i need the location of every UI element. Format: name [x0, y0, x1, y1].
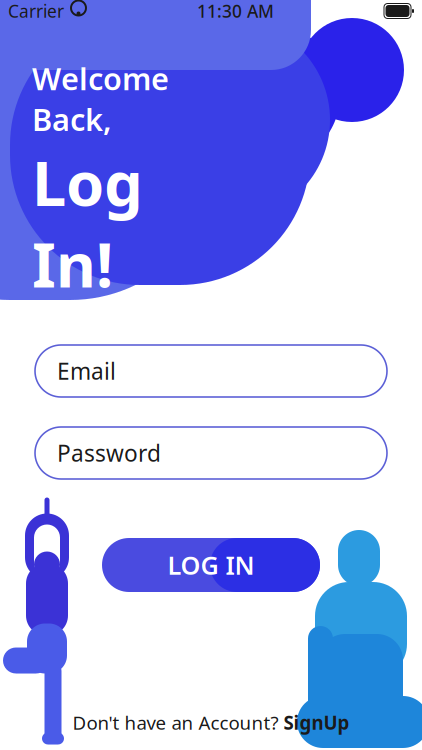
staticText: 11:30 AM [197, 0, 274, 22]
button[interactable]: Password [35, 427, 387, 479]
staticText: Carrier [8, 0, 64, 22]
staticText: LOG IN [167, 548, 254, 582]
button[interactable]: SignUp [283, 710, 349, 735]
staticText: Welcome Back, [32, 58, 169, 139]
button[interactable]: Email [35, 345, 387, 397]
staticText: Don't have an Account? [72, 710, 283, 735]
button[interactable]: LOG IN [102, 538, 320, 592]
staticText: SignUp [283, 710, 349, 735]
staticText: Log In! [32, 141, 143, 304]
staticText: Email [57, 356, 116, 386]
staticText: Password [57, 438, 161, 468]
